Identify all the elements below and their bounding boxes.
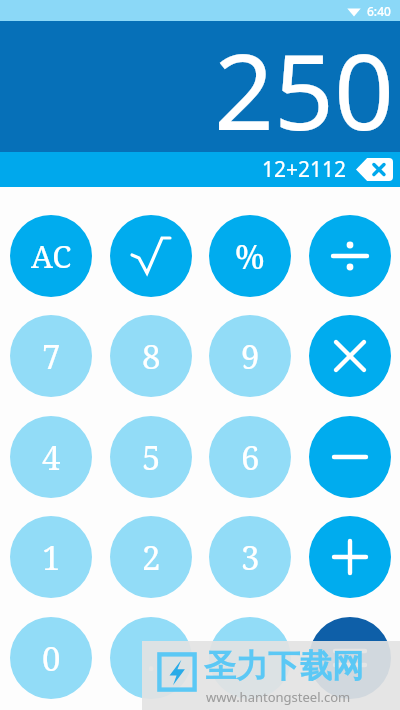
button[interactable]: Plus <box>309 516 391 598</box>
staticText: 0 <box>42 636 61 681</box>
staticText: 4 <box>42 435 61 480</box>
button[interactable]: Multiply <box>309 315 391 397</box>
button[interactable]: Minus <box>309 416 391 498</box>
button[interactable]: 7 <box>10 315 92 397</box>
staticText: 圣力下载网 <box>204 646 364 686</box>
staticText: 8 <box>142 334 161 379</box>
button[interactable]: 3 <box>209 516 291 598</box>
button[interactable]: Equals <box>309 617 391 699</box>
button[interactable]: 5 <box>110 416 192 498</box>
button[interactable]: 4 <box>10 416 92 498</box>
button[interactable]: 8 <box>110 315 192 397</box>
button[interactable]: Backspace <box>356 158 393 181</box>
staticText: 12+2112 <box>262 155 347 184</box>
staticText: 7 <box>42 334 61 379</box>
button[interactable]: 0 <box>10 617 92 699</box>
button[interactable]: 6 <box>209 416 291 498</box>
staticText: 5 <box>142 435 161 480</box>
button[interactable]: 9 <box>209 315 291 397</box>
staticText: 2 <box>142 535 161 580</box>
button[interactable]: Clear entry <box>209 617 291 699</box>
staticText: 9 <box>241 334 260 379</box>
button[interactable]: % <box>209 215 291 297</box>
staticText: 6:40 <box>367 3 391 19</box>
staticText: 250 <box>214 18 395 149</box>
staticText: % <box>235 234 265 279</box>
button[interactable]: 2 <box>110 516 192 598</box>
button[interactable]: Square root <box>110 215 192 297</box>
button[interactable]: 1 <box>10 516 92 598</box>
staticText: 1 <box>42 535 61 580</box>
staticText: . <box>147 636 156 681</box>
button[interactable]: . <box>110 617 192 699</box>
button[interactable]: AC <box>10 215 92 297</box>
staticText: 6 <box>241 435 260 480</box>
staticText: 3 <box>241 535 260 580</box>
staticText: www.hantongsteel.com <box>206 688 351 706</box>
button[interactable]: Divide <box>309 215 391 297</box>
staticText: AC <box>31 235 72 277</box>
